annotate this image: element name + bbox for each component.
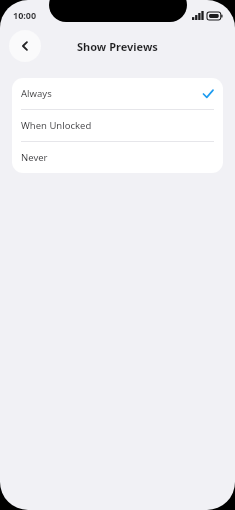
staticText: Show Previews [77, 39, 158, 54]
button[interactable]: Back [9, 30, 41, 62]
staticText: When Unlocked [21, 119, 92, 132]
button[interactable]: Always [12, 78, 223, 109]
staticText: 10:00 [13, 9, 37, 21]
staticText: Never [21, 151, 48, 164]
button[interactable]: When Unlocked [12, 110, 223, 141]
staticText: Always [21, 87, 52, 100]
button[interactable]: Never [12, 142, 223, 173]
